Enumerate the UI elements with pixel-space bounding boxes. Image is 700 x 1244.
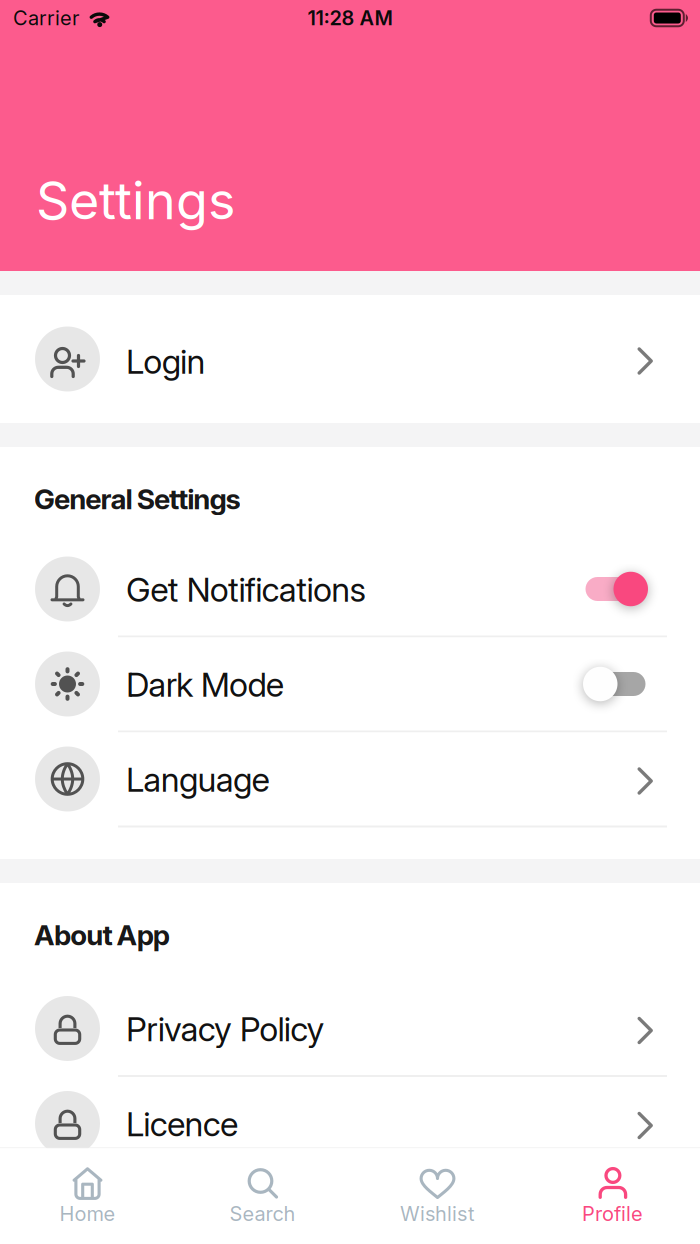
staticText: Dark Mode [126, 665, 284, 704]
button[interactable]: Licence [0, 1077, 700, 1170]
staticText: Search [229, 1202, 295, 1226]
staticText: Language [126, 760, 269, 799]
button[interactable]: Privacy Policy [0, 982, 700, 1075]
staticText: Licence [126, 1104, 238, 1144]
button[interactable]: Dark Mode [583, 666, 648, 702]
staticText: About App [34, 918, 170, 951]
staticText: 11:28 AM [307, 6, 392, 30]
staticText: Settings [36, 170, 235, 231]
button[interactable]: Home [0, 1148, 175, 1244]
button[interactable]: Profile [525, 1148, 700, 1244]
staticText: Privacy Policy [126, 1009, 324, 1049]
button[interactable]: Get Notifications [583, 571, 648, 607]
staticText: Get Notifications [126, 570, 367, 609]
staticText: General Settings [34, 482, 240, 515]
staticText: Login [126, 342, 205, 381]
staticText: Home [59, 1202, 115, 1226]
button[interactable]: Language [0, 732, 700, 825]
button[interactable]: Login [0, 295, 700, 423]
staticText: Wishlist [400, 1202, 475, 1226]
staticText: Profile [582, 1202, 643, 1226]
button[interactable]: Wishlist [350, 1148, 525, 1244]
button[interactable]: Search [175, 1148, 350, 1244]
staticText: Carrier [13, 6, 79, 30]
